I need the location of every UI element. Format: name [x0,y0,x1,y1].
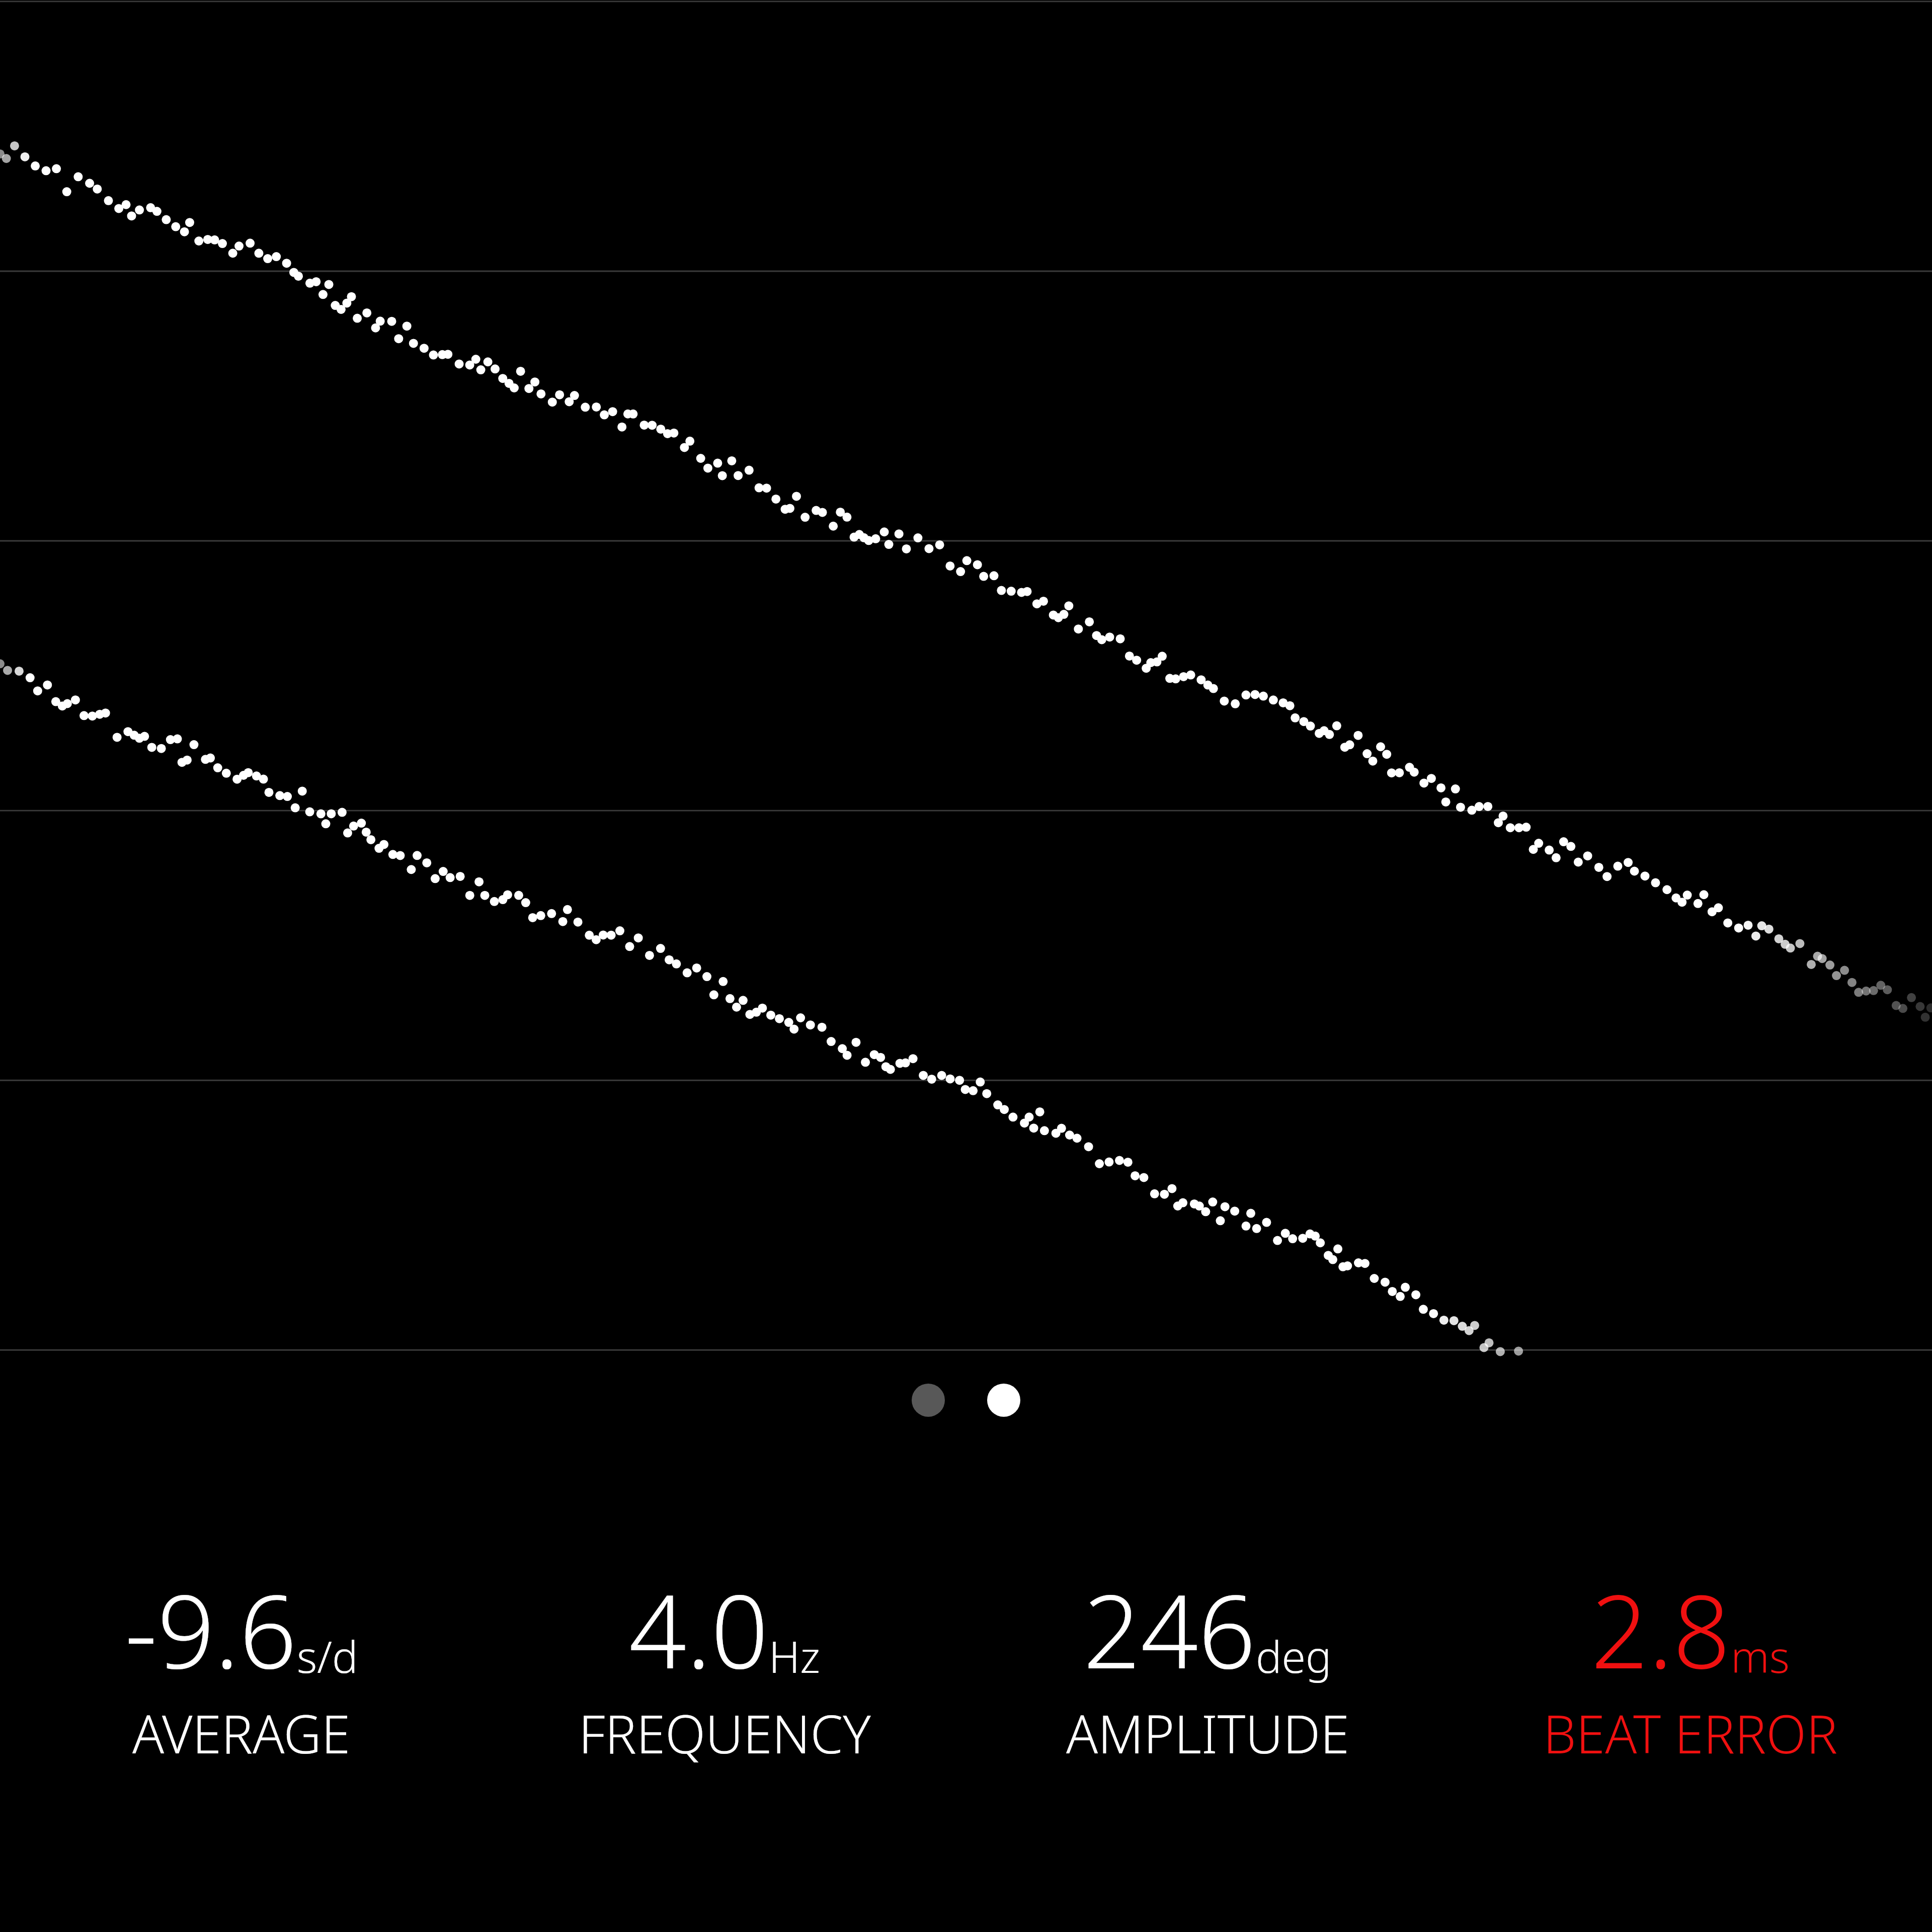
staticText: Hz [769,1627,820,1685]
staticText: BEAT ERROR [1543,1698,1838,1769]
button[interactable]: Timing trace graph [0,0,1932,1353]
button[interactable]: 4.0 [483,1561,966,1769]
staticText: ms [1731,1627,1790,1685]
button[interactable]: Page 1 [912,1384,945,1417]
staticText: s/d [297,1627,358,1685]
button[interactable]: 2.8 [1449,1561,1932,1769]
staticText: 4.0 [629,1561,769,1698]
staticText: AVERAGE [132,1698,351,1769]
staticText: AMPLITUDE [1066,1698,1349,1769]
staticText: deg [1256,1627,1332,1685]
button[interactable]: -9.6 [0,1561,483,1769]
staticText: -9.6 [125,1561,297,1698]
button[interactable]: Page 2 [987,1384,1020,1417]
staticText: FREQUENCY [579,1698,871,1769]
staticText: 2.8 [1591,1561,1731,1698]
staticText: 246 [1083,1561,1256,1698]
button[interactable]: 246 [966,1561,1449,1769]
